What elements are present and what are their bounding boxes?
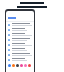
button[interactable]: Colour 2	[16, 64, 19, 67]
button[interactable]	[6, 22, 34, 27]
button[interactable]	[6, 37, 34, 42]
button[interactable]	[6, 52, 34, 57]
button[interactable]: Colour 4	[24, 64, 27, 67]
button[interactable]	[6, 47, 34, 52]
button[interactable]	[6, 27, 34, 32]
button[interactable]: Colour 5	[28, 64, 31, 67]
button[interactable]	[6, 32, 34, 37]
button[interactable]	[6, 42, 34, 47]
button[interactable]	[6, 57, 34, 62]
button[interactable]: Colour 0	[8, 64, 11, 67]
button[interactable]: Colour 3	[20, 64, 23, 67]
button[interactable]: Colour 1	[12, 64, 15, 67]
